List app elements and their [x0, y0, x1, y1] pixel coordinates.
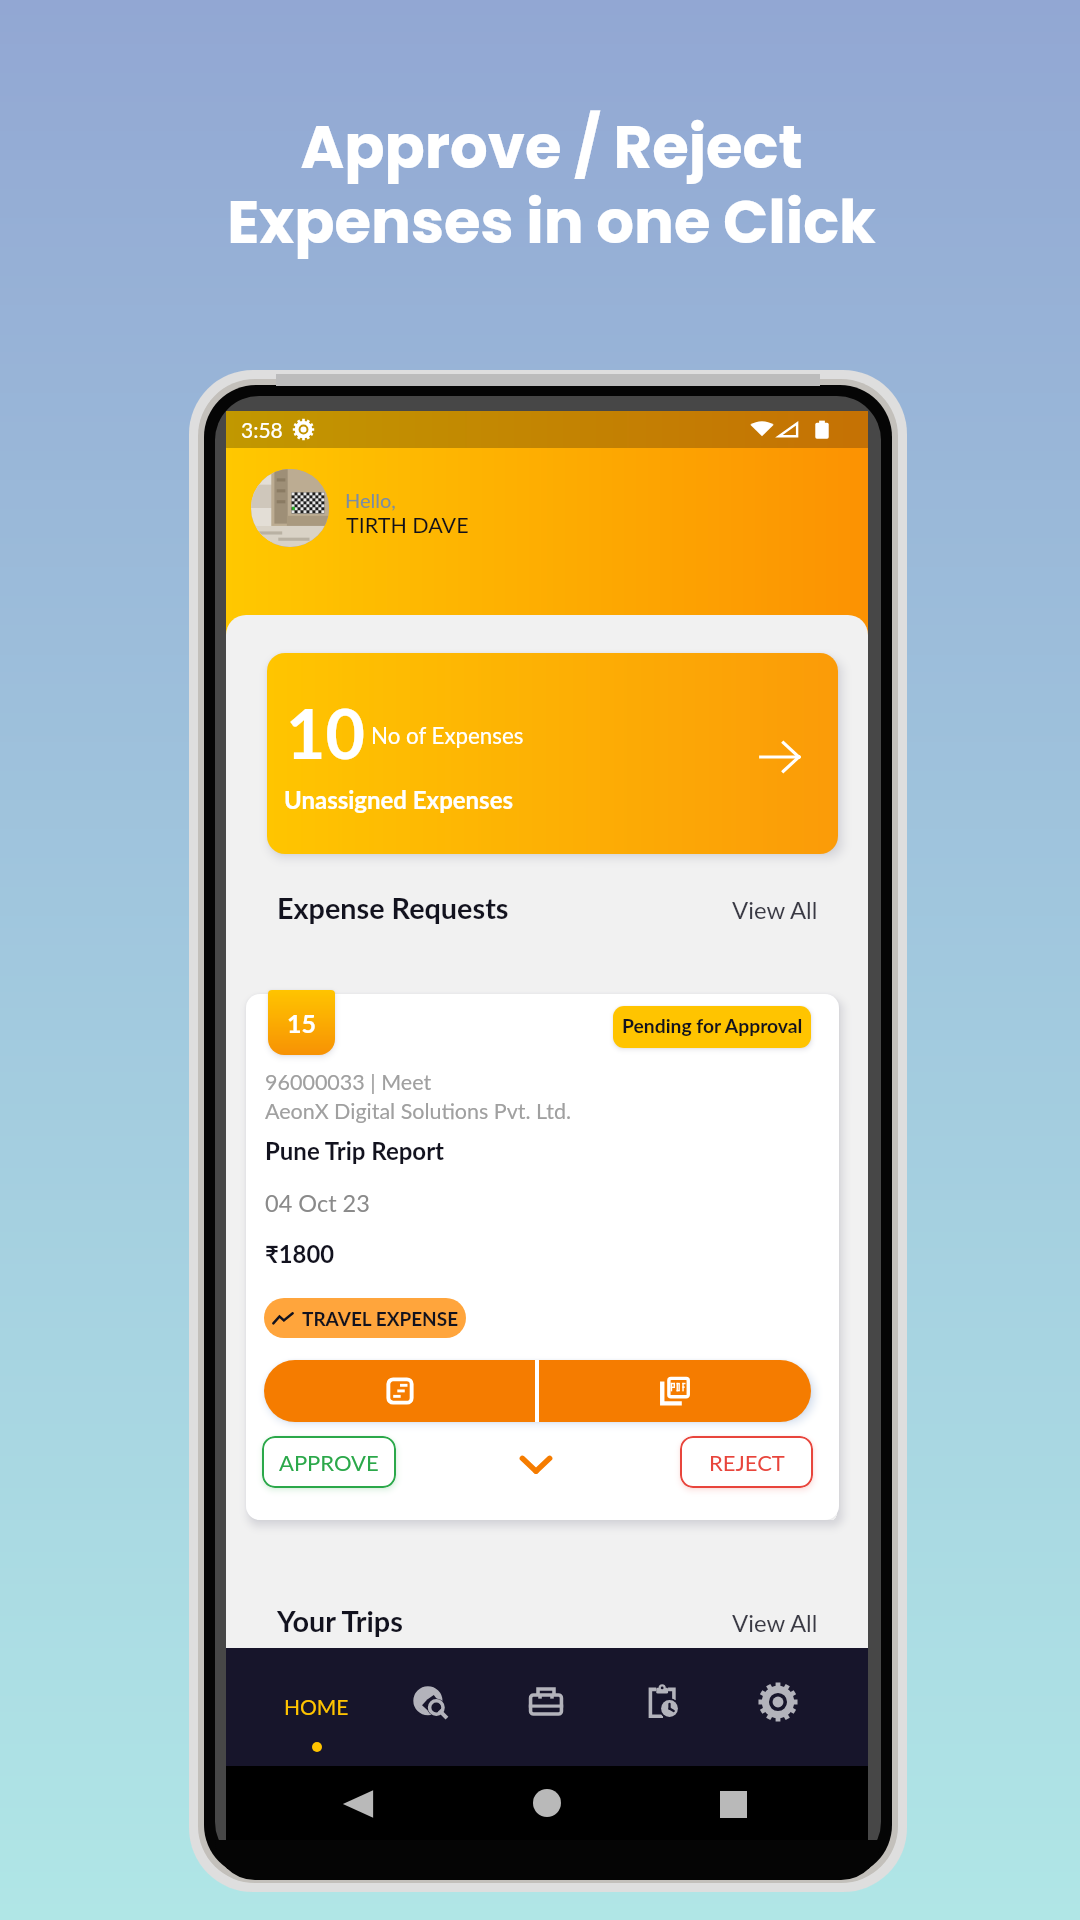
staticText: 3:58	[241, 417, 283, 442]
button[interactable]: Back	[340, 1786, 376, 1822]
staticText: Expenses in one Click	[227, 181, 876, 264]
staticText: 96000033 | Meet	[265, 1069, 432, 1095]
staticText: TRAVEL EXPENSE	[302, 1307, 459, 1330]
button[interactable]: Pending for Approval	[613, 1006, 811, 1048]
button[interactable]: REJECT	[680, 1436, 813, 1488]
button[interactable]: Reports	[605, 1648, 721, 1766]
staticText: ₹1800	[265, 1240, 334, 1269]
staticText: View All	[732, 895, 818, 924]
button[interactable]: Settings	[720, 1648, 836, 1766]
staticText: REJECT	[709, 1449, 785, 1475]
button[interactable]: HOME	[258, 1648, 374, 1766]
button[interactable]: View All	[720, 1594, 830, 1651]
staticText: Unassigned Expenses	[284, 785, 514, 814]
button[interactable]: Download PDF	[539, 1360, 811, 1422]
staticText: Approve / Reject	[300, 106, 803, 189]
staticText: View All	[732, 1608, 818, 1637]
button[interactable]: Search trips	[372, 1648, 488, 1766]
staticText: 04 Oct 23	[265, 1189, 370, 1217]
staticText: 15	[287, 1008, 317, 1038]
button[interactable]: APPROVE	[262, 1436, 396, 1488]
staticText: Pune Trip Report	[265, 1136, 445, 1165]
button[interactable]: Pune Trip Report expense request	[246, 994, 839, 1520]
staticText: TIRTH DAVE	[346, 512, 469, 538]
button[interactable]: Home	[533, 1789, 561, 1817]
button[interactable]: View report	[264, 1360, 535, 1422]
button[interactable]: 10	[267, 653, 838, 854]
staticText: APPROVE	[279, 1449, 379, 1475]
staticText: Hello,	[345, 488, 396, 512]
staticText: HOME	[284, 1694, 349, 1719]
staticText: Expense Requests	[277, 891, 509, 926]
staticText: 10	[286, 692, 365, 774]
button[interactable]: Expenses	[488, 1648, 604, 1766]
button[interactable]: View All	[720, 881, 830, 938]
staticText: No of Expenses	[371, 722, 524, 749]
staticText: AeonX Digital Solutions Pvt. Ltd.	[265, 1098, 572, 1124]
staticText: Pending for Approval	[622, 1014, 803, 1037]
button[interactable]: Profile	[251, 469, 329, 547]
button[interactable]: TRAVEL EXPENSE	[264, 1298, 466, 1338]
staticText: Your Trips	[277, 1604, 403, 1639]
button[interactable]: Expand	[518, 1446, 554, 1482]
